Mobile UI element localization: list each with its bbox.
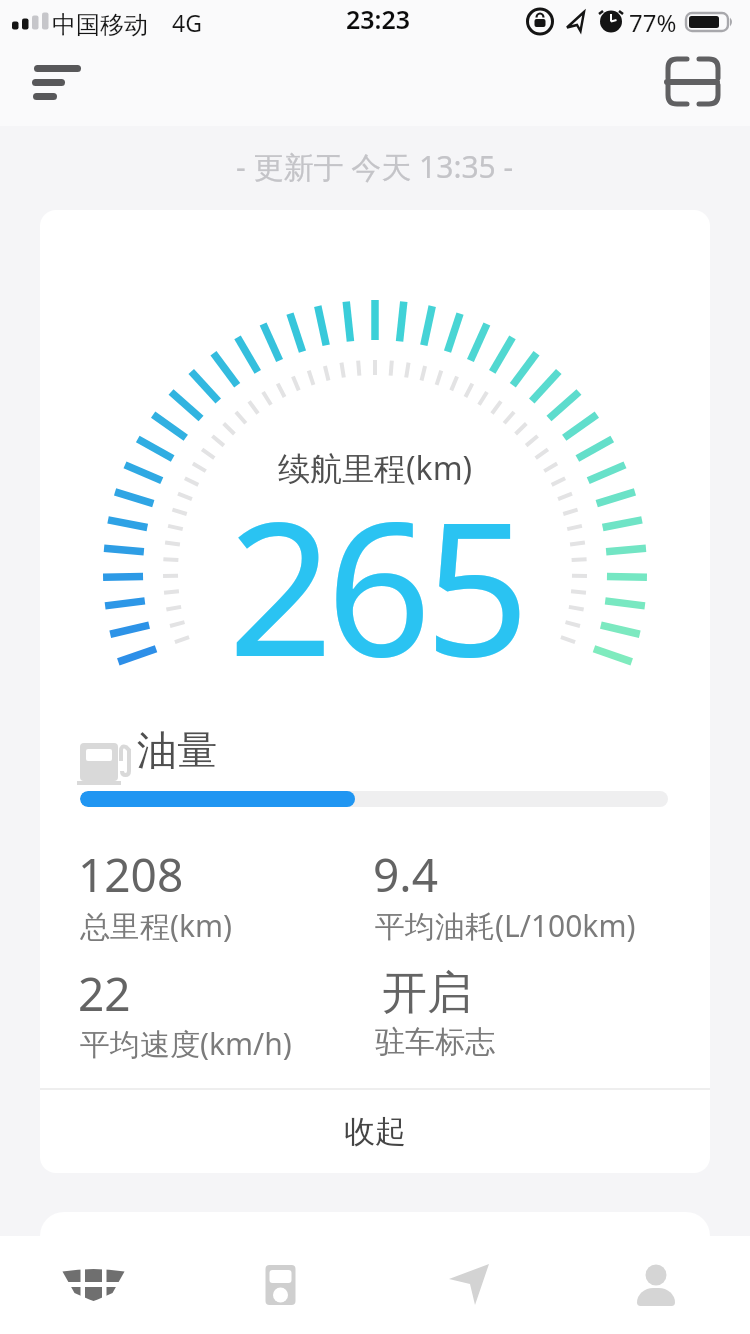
staticText: 中国移动 bbox=[52, 10, 148, 40]
staticText: 平均速度(km/h) bbox=[80, 1023, 292, 1064]
staticText: 总里程(km) bbox=[80, 905, 233, 946]
staticText: 1208 bbox=[78, 843, 184, 906]
button[interactable] bbox=[187, 1236, 374, 1334]
button[interactable] bbox=[0, 1236, 187, 1334]
staticText: - 更新于 今天 13:35 - bbox=[236, 146, 514, 187]
staticText: 23:23 bbox=[346, 2, 411, 36]
button[interactable] bbox=[562, 1236, 750, 1334]
staticText: 4G bbox=[172, 7, 202, 38]
staticText: 收起 bbox=[344, 1112, 406, 1151]
staticText: 驻车标志 bbox=[375, 1023, 495, 1061]
staticText: 265 bbox=[228, 459, 523, 710]
staticText: 续航里程(km) bbox=[278, 446, 473, 490]
button[interactable] bbox=[655, 45, 730, 115]
button[interactable] bbox=[374, 1236, 562, 1334]
button[interactable] bbox=[20, 52, 96, 112]
staticText: 77% bbox=[629, 6, 677, 39]
button[interactable]: 收起 bbox=[40, 1090, 710, 1173]
staticText: 9.4 bbox=[373, 843, 438, 906]
staticText: 22 bbox=[78, 962, 131, 1025]
staticText: 平均油耗(L/100km) bbox=[375, 905, 636, 946]
staticText: 开启 bbox=[382, 965, 472, 1022]
staticText: 油量 bbox=[137, 725, 217, 775]
